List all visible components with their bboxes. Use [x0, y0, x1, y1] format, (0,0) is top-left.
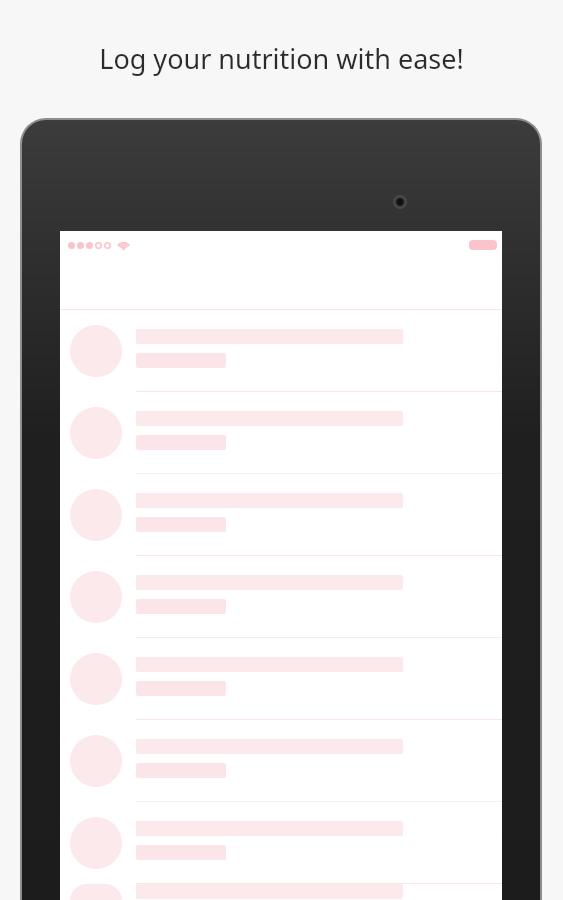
button[interactable]: [60, 884, 502, 900]
button[interactable]: [60, 638, 502, 720]
staticText: Log your nutrition with ease!: [0, 40, 563, 77]
button[interactable]: [60, 392, 502, 474]
button[interactable]: [60, 720, 502, 802]
button[interactable]: [60, 802, 502, 884]
button[interactable]: [60, 556, 502, 638]
button[interactable]: [60, 474, 502, 556]
button[interactable]: [60, 310, 502, 392]
